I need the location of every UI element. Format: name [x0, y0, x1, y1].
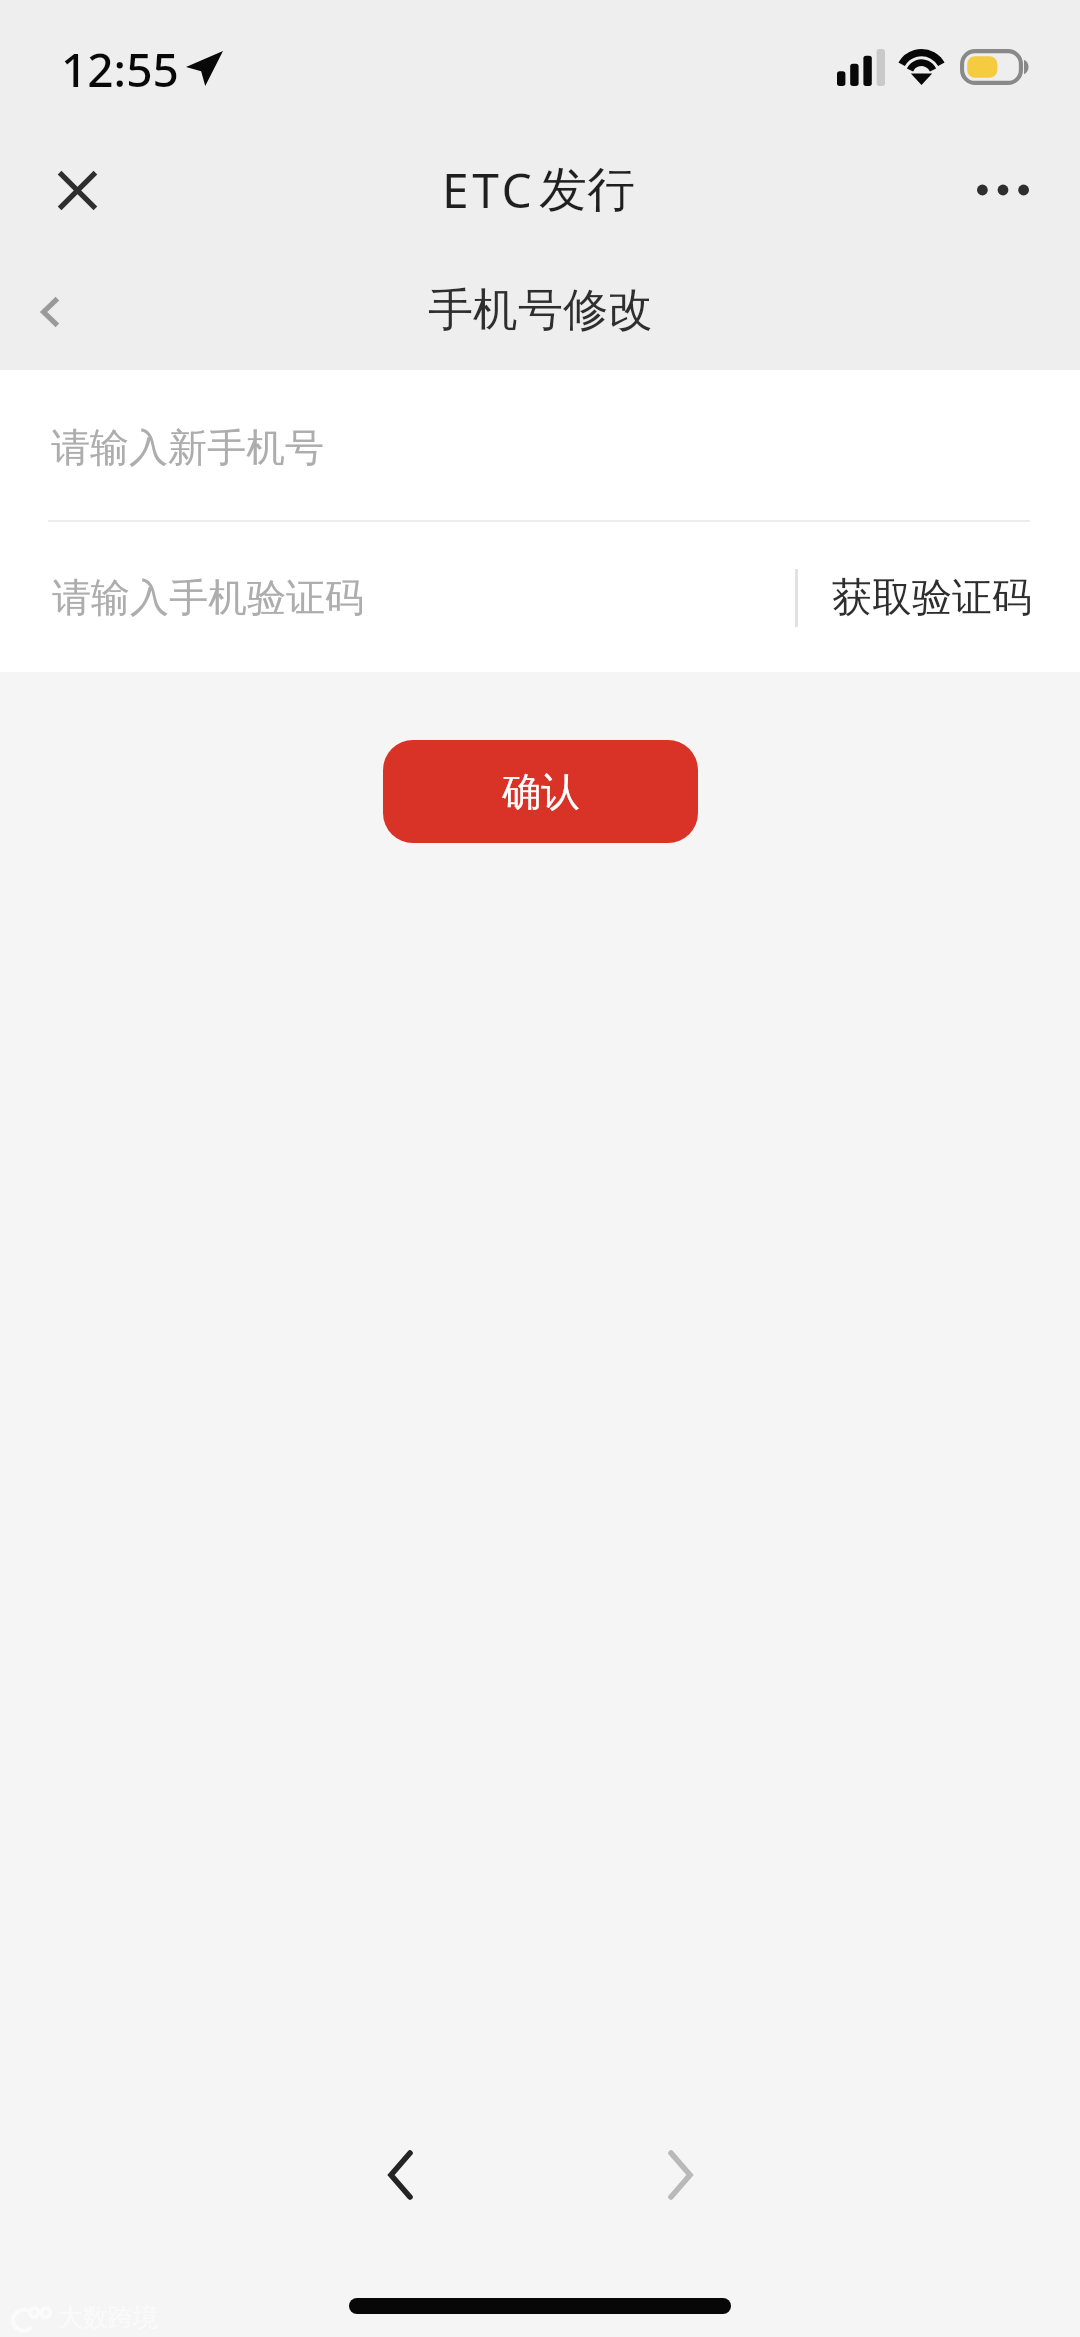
button[interactable]: More options	[958, 145, 1048, 235]
button[interactable]: 获取验证码	[795, 522, 1080, 672]
staticText: 发行	[539, 160, 635, 220]
button[interactable]: Back	[330, 2117, 470, 2232]
staticText: 确认	[502, 767, 580, 816]
staticText: 请输入新手机号	[51, 423, 324, 472]
staticText: 请输入手机验证码	[52, 573, 364, 622]
button[interactable]: 请输入手机验证码	[0, 522, 1080, 672]
staticText: 12:55	[61, 38, 179, 101]
staticText: ETC	[442, 157, 536, 222]
button[interactable]: 确认	[383, 740, 698, 843]
button[interactable]: Forward	[610, 2117, 750, 2232]
staticText: 获取验证码	[832, 572, 1032, 622]
button[interactable]: Back	[5, 267, 95, 357]
staticText: 手机号修改	[428, 282, 653, 339]
button[interactable]: Close	[32, 145, 122, 235]
button[interactable]: 请输入新手机号	[0, 370, 1080, 520]
